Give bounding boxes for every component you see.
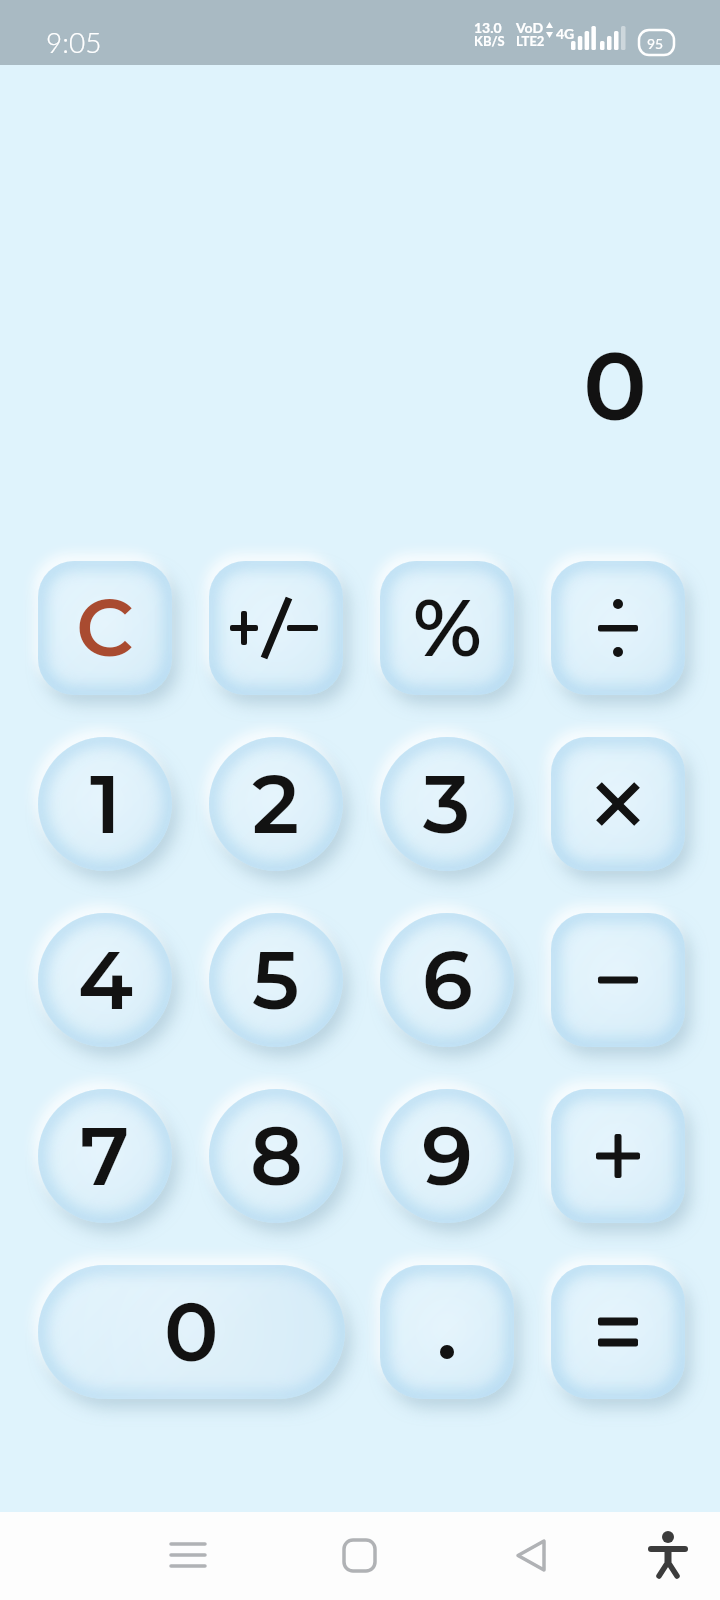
staticText: 0 xyxy=(164,1283,219,1382)
button[interactable] xyxy=(551,913,685,1047)
button[interactable] xyxy=(551,1265,685,1399)
staticText: 13.0 xyxy=(474,19,502,36)
staticText: 5 xyxy=(252,931,300,1030)
staticText: 0 xyxy=(583,328,647,444)
button[interactable]: 2 xyxy=(209,737,343,871)
staticText: 9 xyxy=(422,1107,473,1206)
button[interactable]: % xyxy=(380,561,514,695)
staticText: 2 xyxy=(252,755,300,854)
button[interactable]: 0 xyxy=(38,1265,345,1399)
staticText: 6 xyxy=(422,931,473,1030)
button[interactable]: 8 xyxy=(209,1089,343,1223)
button[interactable]: C xyxy=(38,561,172,695)
staticText: VoD xyxy=(516,19,544,36)
button[interactable] xyxy=(551,1089,685,1223)
button[interactable] xyxy=(160,1528,216,1584)
button[interactable] xyxy=(640,1528,696,1584)
staticText: 1 xyxy=(90,755,121,854)
staticText: LTE2 xyxy=(516,33,545,49)
staticText: 8 xyxy=(250,1107,303,1206)
button[interactable] xyxy=(504,1528,560,1584)
button[interactable] xyxy=(380,1265,514,1399)
button[interactable]: 6 xyxy=(380,913,514,1047)
staticText: 4 xyxy=(78,931,133,1030)
staticText: C xyxy=(76,579,135,677)
button[interactable]: 9 xyxy=(380,1089,514,1223)
button[interactable]: 4 xyxy=(38,913,172,1047)
button[interactable]: 1 xyxy=(38,737,172,871)
button[interactable] xyxy=(551,737,685,871)
staticText: 7 xyxy=(80,1107,130,1206)
staticText: 4G xyxy=(556,25,575,42)
button[interactable]: 7 xyxy=(38,1089,172,1223)
button[interactable]: 3 xyxy=(380,737,514,871)
button[interactable] xyxy=(551,561,685,695)
button[interactable] xyxy=(209,561,343,695)
staticText: 3 xyxy=(423,755,471,854)
button[interactable]: 5 xyxy=(209,913,343,1047)
staticText: 95 xyxy=(647,35,664,52)
button[interactable] xyxy=(332,1528,388,1584)
staticText: KB/S xyxy=(474,33,505,49)
staticText: 9:05 xyxy=(46,25,102,59)
staticText: % xyxy=(413,579,482,677)
